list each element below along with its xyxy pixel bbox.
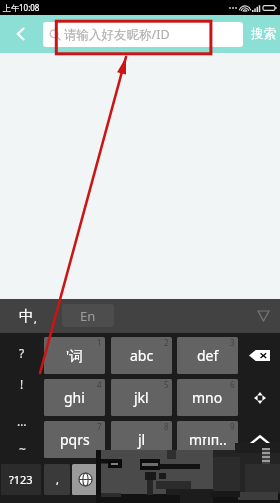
staticText: ?123 bbox=[9, 472, 33, 487]
staticText: jl bbox=[138, 430, 146, 449]
staticText: 9 bbox=[230, 421, 235, 432]
button[interactable]: , bbox=[44, 464, 70, 495]
button[interactable]: ~ bbox=[0, 433, 44, 465]
button[interactable]: 请输入好友昵称/ID bbox=[43, 22, 243, 47]
button[interactable]: abc bbox=[111, 337, 172, 374]
staticText: … bbox=[17, 413, 27, 429]
button[interactable]: 中 bbox=[0, 299, 56, 333]
staticText: ghi bbox=[64, 388, 85, 407]
staticText: jkl bbox=[134, 388, 149, 407]
button[interactable]: ! bbox=[0, 368, 44, 400]
staticText: 中 bbox=[19, 307, 34, 326]
button[interactable]: Change language bbox=[72, 464, 98, 495]
button[interactable]: jl bbox=[111, 421, 172, 458]
staticText: mוזп.. bbox=[189, 430, 227, 449]
staticText: 8 bbox=[164, 421, 169, 432]
staticText: 请输入好友昵称/ID bbox=[64, 26, 170, 43]
staticText: pqrs bbox=[60, 430, 90, 449]
button[interactable]: def bbox=[177, 337, 238, 374]
staticText: 7 bbox=[97, 421, 102, 432]
staticText: 1 bbox=[97, 337, 102, 348]
staticText: 4 bbox=[97, 379, 102, 390]
staticText: def bbox=[197, 346, 219, 365]
button[interactable]: Backspace bbox=[239, 337, 280, 374]
staticText: , bbox=[56, 472, 59, 487]
button[interactable]: 搜索 bbox=[251, 26, 276, 42]
button[interactable]: mוזп.. bbox=[177, 421, 238, 458]
button[interactable]: ? bbox=[0, 337, 44, 369]
button[interactable]: Arrow keys bbox=[239, 379, 280, 416]
staticText: 5 bbox=[164, 379, 169, 390]
button[interactable]: ghi bbox=[44, 379, 105, 416]
button[interactable]: … bbox=[0, 405, 44, 437]
button[interactable]: Space bbox=[100, 464, 239, 495]
staticText: ? bbox=[19, 345, 25, 361]
button[interactable]: En bbox=[62, 304, 114, 327]
staticText: ~ bbox=[19, 441, 26, 457]
staticText: mno bbox=[192, 388, 223, 407]
staticText: ! bbox=[20, 376, 24, 392]
button[interactable]: Back bbox=[0, 15, 42, 53]
button[interactable]: pqrs bbox=[44, 421, 105, 458]
button[interactable]: '词 bbox=[44, 337, 105, 374]
staticText: , bbox=[34, 312, 37, 326]
button[interactable]: mno bbox=[177, 379, 238, 416]
staticText: 2 bbox=[164, 337, 169, 348]
staticText: 6 bbox=[230, 379, 235, 390]
staticText: 上午10:08 bbox=[3, 2, 40, 13]
button[interactable]: Enter bbox=[239, 421, 280, 458]
staticText: abc bbox=[130, 346, 154, 365]
button[interactable]: ?123 bbox=[1, 464, 41, 495]
staticText: '词 bbox=[66, 346, 84, 365]
staticText: 3 bbox=[230, 337, 235, 348]
staticText: 搜索 bbox=[251, 26, 276, 42]
button[interactable]: jkl bbox=[111, 379, 172, 416]
staticText: En bbox=[80, 307, 96, 325]
button[interactable]: Hide keyboard bbox=[246, 299, 280, 333]
